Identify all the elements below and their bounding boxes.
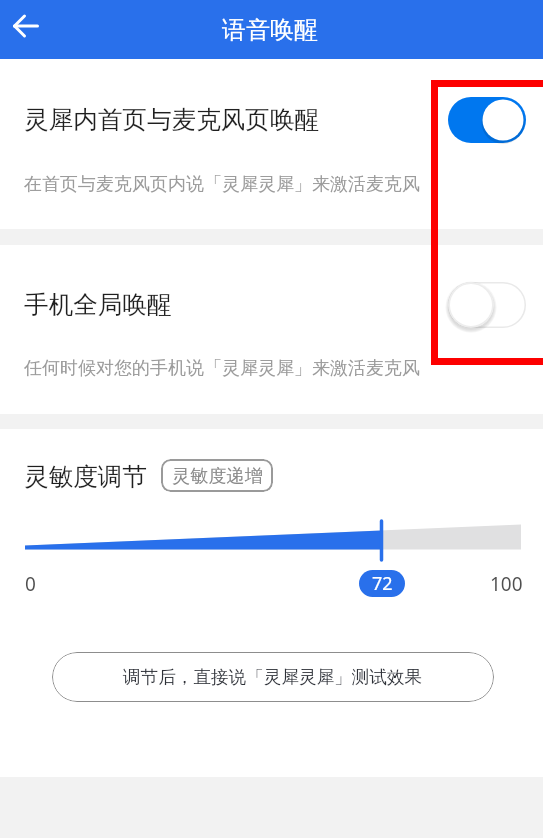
staticText: 在首页与麦克风页内说「灵犀灵犀」来激活麦克风 [24, 173, 420, 196]
button[interactable]: Sensitivity slider, 72 [25, 518, 521, 562]
staticText: 72 [372, 571, 393, 596]
button[interactable]: 手机全局唤醒 [0, 243, 543, 413]
staticText: 100 [490, 571, 523, 597]
staticText: 任何时候对您的手机说「灵犀灵犀」来激活麦克风 [24, 357, 420, 380]
button[interactable]: 灵犀内首页与麦克风页唤醒 [0, 59, 543, 227]
staticText: 灵敏度递增 [172, 464, 263, 487]
button[interactable]: 调节后，直接说「灵犀灵犀」测试效果 [52, 652, 494, 702]
button[interactable]: Back [1, 1, 51, 51]
button[interactable]: Enabled toggle [448, 97, 526, 143]
button[interactable]: 灵敏度递增 [161, 459, 273, 492]
staticText: 手机全局唤醒 [24, 289, 172, 320]
button[interactable]: Disabled toggle [448, 282, 526, 328]
staticText: 调节后，直接说「灵犀灵犀」测试效果 [123, 666, 423, 688]
staticText: 灵犀内首页与麦克风页唤醒 [24, 104, 320, 135]
staticText: 0 [25, 571, 36, 597]
button[interactable]: 72 [359, 570, 405, 597]
staticText: 语音唤醒 [222, 15, 318, 45]
staticText: 灵敏度调节 [24, 461, 147, 492]
